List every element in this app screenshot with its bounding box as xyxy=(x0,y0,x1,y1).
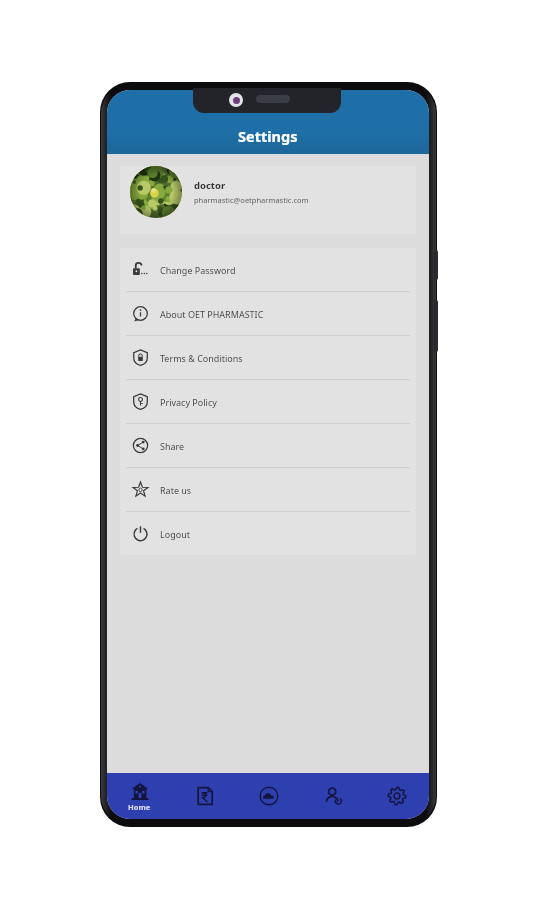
staticText: Change Password xyxy=(160,264,236,276)
button[interactable]: doctor xyxy=(120,166,416,234)
button[interactable]: Share xyxy=(120,424,416,467)
button[interactable]: Cloud xyxy=(237,773,301,819)
staticText: Home xyxy=(128,802,151,812)
staticText: doctor xyxy=(194,179,226,192)
button[interactable]: Profile xyxy=(301,773,365,819)
button[interactable]: Home xyxy=(107,773,172,819)
button[interactable]: Logout xyxy=(120,512,416,555)
staticText: Privacy Policy xyxy=(160,396,217,408)
button[interactable]: About OET PHARMASTIC xyxy=(120,292,416,335)
button[interactable]: Rate us xyxy=(120,468,416,511)
button[interactable]: Settings xyxy=(365,773,429,819)
staticText: About OET PHARMASTIC xyxy=(160,308,264,320)
staticText: Logout xyxy=(160,528,190,540)
button[interactable]: Privacy Policy xyxy=(120,380,416,423)
staticText: Terms & Conditions xyxy=(160,352,243,364)
staticText: Rate us xyxy=(160,484,192,496)
staticText: Settings xyxy=(238,126,298,146)
button[interactable]: Terms & Conditions xyxy=(120,336,416,379)
button[interactable]: Change Password xyxy=(120,248,416,291)
staticText: Share xyxy=(160,440,185,452)
button[interactable]: Orders xyxy=(172,773,237,819)
staticText: pharmastic@oetpharmastic.com xyxy=(194,195,309,205)
